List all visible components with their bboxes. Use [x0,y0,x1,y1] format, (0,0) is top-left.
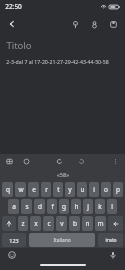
staticText: e [32,185,36,194]
staticText: Titolo [6,39,32,52]
button[interactable]: f [47,199,57,214]
button[interactable]: u [77,182,87,197]
staticText: o [104,185,108,194]
staticText: n [85,219,90,228]
button[interactable]: Keyboard layout [3,155,15,167]
staticText: f [51,202,54,211]
staticText: q [6,185,10,194]
button[interactable]: j [83,199,93,214]
staticText: d [38,202,42,211]
button[interactable]: «58» [51,169,75,180]
button[interactable]: s [21,199,32,214]
staticText: Italiano [53,237,71,244]
staticText: b [73,219,77,228]
button[interactable]: v [56,216,67,231]
button[interactable]: Stickers [20,155,32,167]
button[interactable]: i [89,182,99,197]
button[interactable]: Back [4,16,20,32]
button[interactable]: w [15,182,26,197]
button[interactable]: Shift [2,216,16,231]
button[interactable]: Lock note [86,16,102,32]
button[interactable]: 123 [2,233,26,247]
staticText: 2-3-dal 7 al 17-20-21-27-29-42-43-44-50-… [6,58,109,65]
button[interactable]: c [43,216,54,231]
staticText: t [57,185,60,194]
staticText: «58» [57,171,69,178]
staticText: s [25,202,29,211]
button[interactable]: t [53,182,63,197]
button[interactable]: l [107,199,117,214]
staticText: w [18,185,24,194]
staticText: invio [105,237,117,244]
button[interactable]: Emoji [6,249,18,261]
button[interactable]: g [59,199,69,214]
button[interactable]: More options [109,155,121,167]
staticText: m [97,219,104,228]
staticText: h [74,202,79,211]
button[interactable]: Redo [75,155,87,167]
staticText: k [98,202,102,211]
button[interactable]: o [101,182,111,197]
button[interactable]: m [95,216,106,231]
staticText: z [21,219,25,228]
button[interactable]: d [34,199,45,214]
staticText: c [47,219,51,228]
button[interactable]: h [71,199,81,214]
staticText: v [60,219,64,228]
staticText: j [87,202,89,211]
staticText: 123 [9,237,19,244]
staticText: 22:50 [5,2,22,11]
button[interactable]: a [8,199,19,214]
button[interactable]: n [82,216,93,231]
button[interactable]: k [95,199,105,214]
button[interactable]: q [2,182,13,197]
staticText: a [12,202,16,211]
button[interactable]: Pin [67,16,83,32]
button[interactable]: e [28,182,39,197]
button[interactable]: y [65,182,75,197]
button[interactable]: Undo [53,155,65,167]
button[interactable]: Space [29,233,95,247]
button[interactable]: b [69,216,80,231]
button[interactable]: r [41,182,51,197]
staticText: u [80,185,85,194]
staticText: x [34,219,38,228]
button[interactable]: p [113,182,123,197]
staticText: r [45,185,48,194]
staticText: l [111,202,113,211]
button[interactable]: invio [98,233,123,247]
button[interactable]: Backspace [108,216,123,231]
staticText: g [62,202,66,211]
button[interactable]: Save [105,16,121,32]
staticText: i [93,185,95,194]
staticText: y [68,185,72,194]
button[interactable]: z [18,216,28,231]
staticText: p [116,185,120,194]
button[interactable]: Voice input [107,249,119,261]
button[interactable]: x [30,216,41,231]
